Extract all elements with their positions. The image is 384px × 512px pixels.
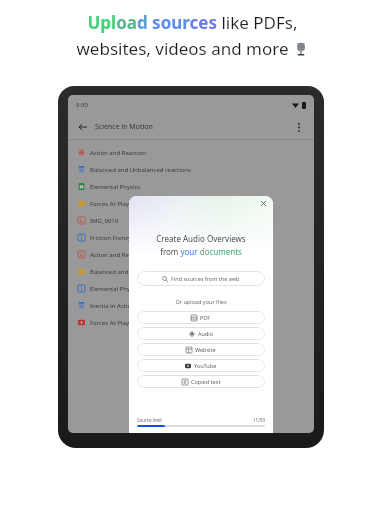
staticText: 9:30 [76,101,88,109]
staticText: Action and Reaction [90,251,147,259]
button[interactable]: Forces At Play [68,314,314,331]
button[interactable]: More options [292,120,306,134]
staticText: Friction Frenzy [90,234,132,242]
button[interactable]: Action and Reaction [68,144,314,161]
button[interactable]: Balanced and Unbalanced reactions [68,161,314,178]
button[interactable]: Close [259,199,268,208]
staticText: Balanced and Unbalanced reactions [90,166,191,174]
staticText: Action and Reaction [90,149,147,157]
button[interactable]: Elemental Physics [68,178,314,195]
button[interactable]: Friction Frenzy [68,229,314,246]
staticText: Forces At Play [90,200,129,208]
staticText: Elemental Physics [90,285,141,293]
button[interactable]: Action and Reaction [68,246,314,263]
staticText: websites, videos and more [76,37,289,60]
staticText: Upload sources like PDFs, [87,11,298,34]
staticText: PDF [200,314,211,321]
staticText: Inertia in Action [90,302,135,310]
staticText: Elemental Physics [90,183,141,191]
button[interactable]: Back [76,120,90,134]
staticText: YouTube [194,362,217,369]
button[interactable]: Inertia in Action [68,297,314,314]
button[interactable]: Balanced and Unbalanced reactions [68,263,314,280]
button[interactable]: YouTube [137,359,265,372]
staticText: Audio [198,330,214,337]
staticText: Balanced and Unbalanced reactions [90,268,191,276]
staticText: Create Audio Overviews [129,233,273,244]
button[interactable]: Find sources from the web [137,271,265,286]
button[interactable]: PDF [137,311,265,324]
button[interactable]: Forces At Play [68,195,314,212]
staticText: Forces At Play [90,319,129,327]
staticText: IMG_9019 [90,217,119,225]
staticText: Source limit [137,417,162,423]
button[interactable]: Audio [137,327,265,340]
button[interactable]: Copied text [137,375,265,388]
staticText: Or upload your files [129,298,273,305]
staticText: Science in Motion [95,122,153,132]
button[interactable]: IMG_9019 [68,212,314,229]
staticText: from your documents [129,246,273,257]
staticText: Find sources from the web [171,275,240,282]
staticText: 11/50 [253,417,265,423]
button[interactable]: Elemental Physics [68,280,314,297]
button[interactable]: Website [137,343,265,356]
staticText: Copied text [191,378,221,385]
staticText: Website [195,346,216,353]
